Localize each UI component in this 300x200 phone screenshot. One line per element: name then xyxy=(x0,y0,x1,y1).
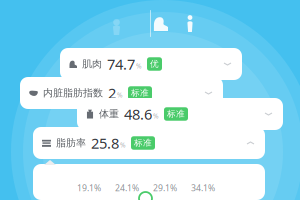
button[interactable]: 体重 xyxy=(77,98,283,130)
button[interactable]: Body composition xyxy=(186,15,194,32)
staticText: 肌肉 xyxy=(82,58,102,70)
staticText: 标准 xyxy=(131,87,149,98)
staticText: 19.1% xyxy=(77,182,101,194)
staticText: 优 xyxy=(150,58,159,69)
staticText: 34.1% xyxy=(191,182,215,194)
button[interactable]: 肌肉 xyxy=(60,48,242,80)
staticText: 25.8 xyxy=(91,133,119,153)
staticText: 体重 xyxy=(99,108,119,120)
button[interactable]: 内脏脂肪指数 xyxy=(20,77,223,109)
staticText: 29.1% xyxy=(153,182,177,194)
button[interactable]: 脂肪率 xyxy=(33,127,265,159)
staticText: 标准 xyxy=(167,108,185,119)
staticText: 48.6 xyxy=(124,104,152,124)
staticText: % xyxy=(136,61,142,71)
button[interactable]: Profile xyxy=(111,20,122,35)
button[interactable]: Muscle xyxy=(153,16,168,31)
staticText: 74.7 xyxy=(107,54,135,74)
staticText: % xyxy=(117,90,123,100)
staticText: 标准 xyxy=(134,137,152,148)
staticText: 24.1% xyxy=(115,182,139,194)
staticText: % xyxy=(153,111,159,121)
staticText: 内脏脂肪指数 xyxy=(43,87,103,99)
staticText: % xyxy=(120,140,126,150)
staticText: 脂肪率 xyxy=(56,137,86,149)
staticText: 2 xyxy=(108,83,116,103)
